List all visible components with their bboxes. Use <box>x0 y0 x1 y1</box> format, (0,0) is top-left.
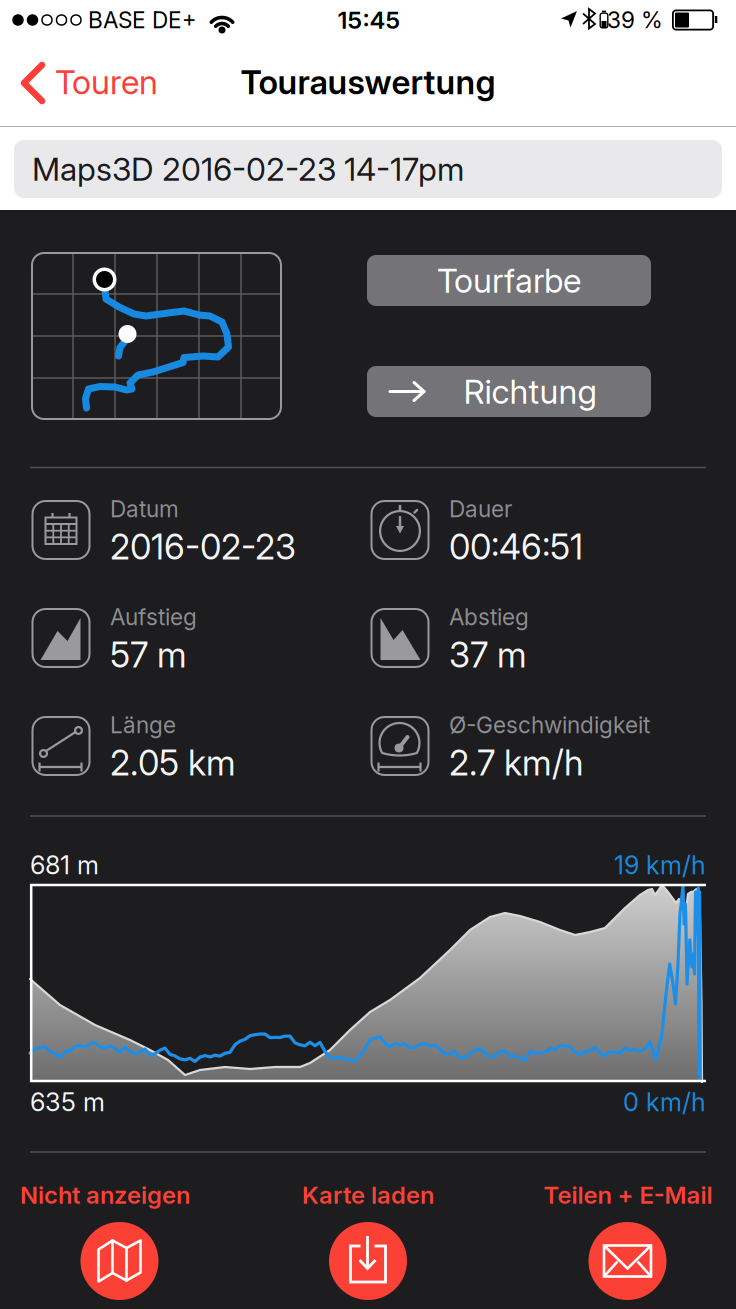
staticText: 39 % <box>607 7 663 33</box>
button[interactable]: Tourfarbe <box>367 255 651 306</box>
button[interactable]: Richtung <box>367 366 651 417</box>
staticText: 0 km/h <box>623 1087 706 1117</box>
staticText: 15:45 <box>337 6 400 34</box>
staticText: Dauer <box>449 496 512 522</box>
staticText: 635 m <box>30 1087 105 1117</box>
staticText: 2.05 km <box>110 743 236 783</box>
button[interactable]: Maps3D 2016-02-23 14-17pm <box>14 140 722 198</box>
staticText: Tourauswertung <box>240 62 495 102</box>
staticText: Touren <box>55 62 158 102</box>
staticText: Karte laden <box>302 1181 434 1209</box>
button[interactable]: Teilen + E-Mail <box>518 1177 736 1307</box>
staticText: Richtung <box>463 372 596 411</box>
staticText: 2016-02-23 <box>110 527 296 567</box>
staticText: 57 m <box>110 635 187 675</box>
button[interactable]: Touren <box>8 40 198 128</box>
staticText: Teilen + E-Mail <box>543 1181 712 1209</box>
staticText: 19 km/h <box>614 850 706 880</box>
staticText: 2.7 km/h <box>449 743 583 783</box>
staticText: 37 m <box>449 635 527 675</box>
button[interactable]: Karte laden <box>258 1177 478 1307</box>
staticText: BASE DE+ <box>88 7 197 33</box>
staticText: 681 m <box>30 850 99 880</box>
staticText: Maps3D 2016-02-23 14-17pm <box>32 150 464 188</box>
staticText: Tourfarbe <box>437 261 581 300</box>
staticText: Abstieg <box>449 604 529 630</box>
staticText: 00:46:51 <box>449 527 583 567</box>
staticText: Datum <box>110 496 179 522</box>
staticText: Aufstieg <box>110 604 197 630</box>
button[interactable]: Nicht anzeigen <box>1 1177 221 1307</box>
staticText: Ø-Geschwindigkeit <box>449 712 650 738</box>
staticText: Länge <box>110 712 176 738</box>
staticText: Nicht anzeigen <box>20 1181 190 1209</box>
